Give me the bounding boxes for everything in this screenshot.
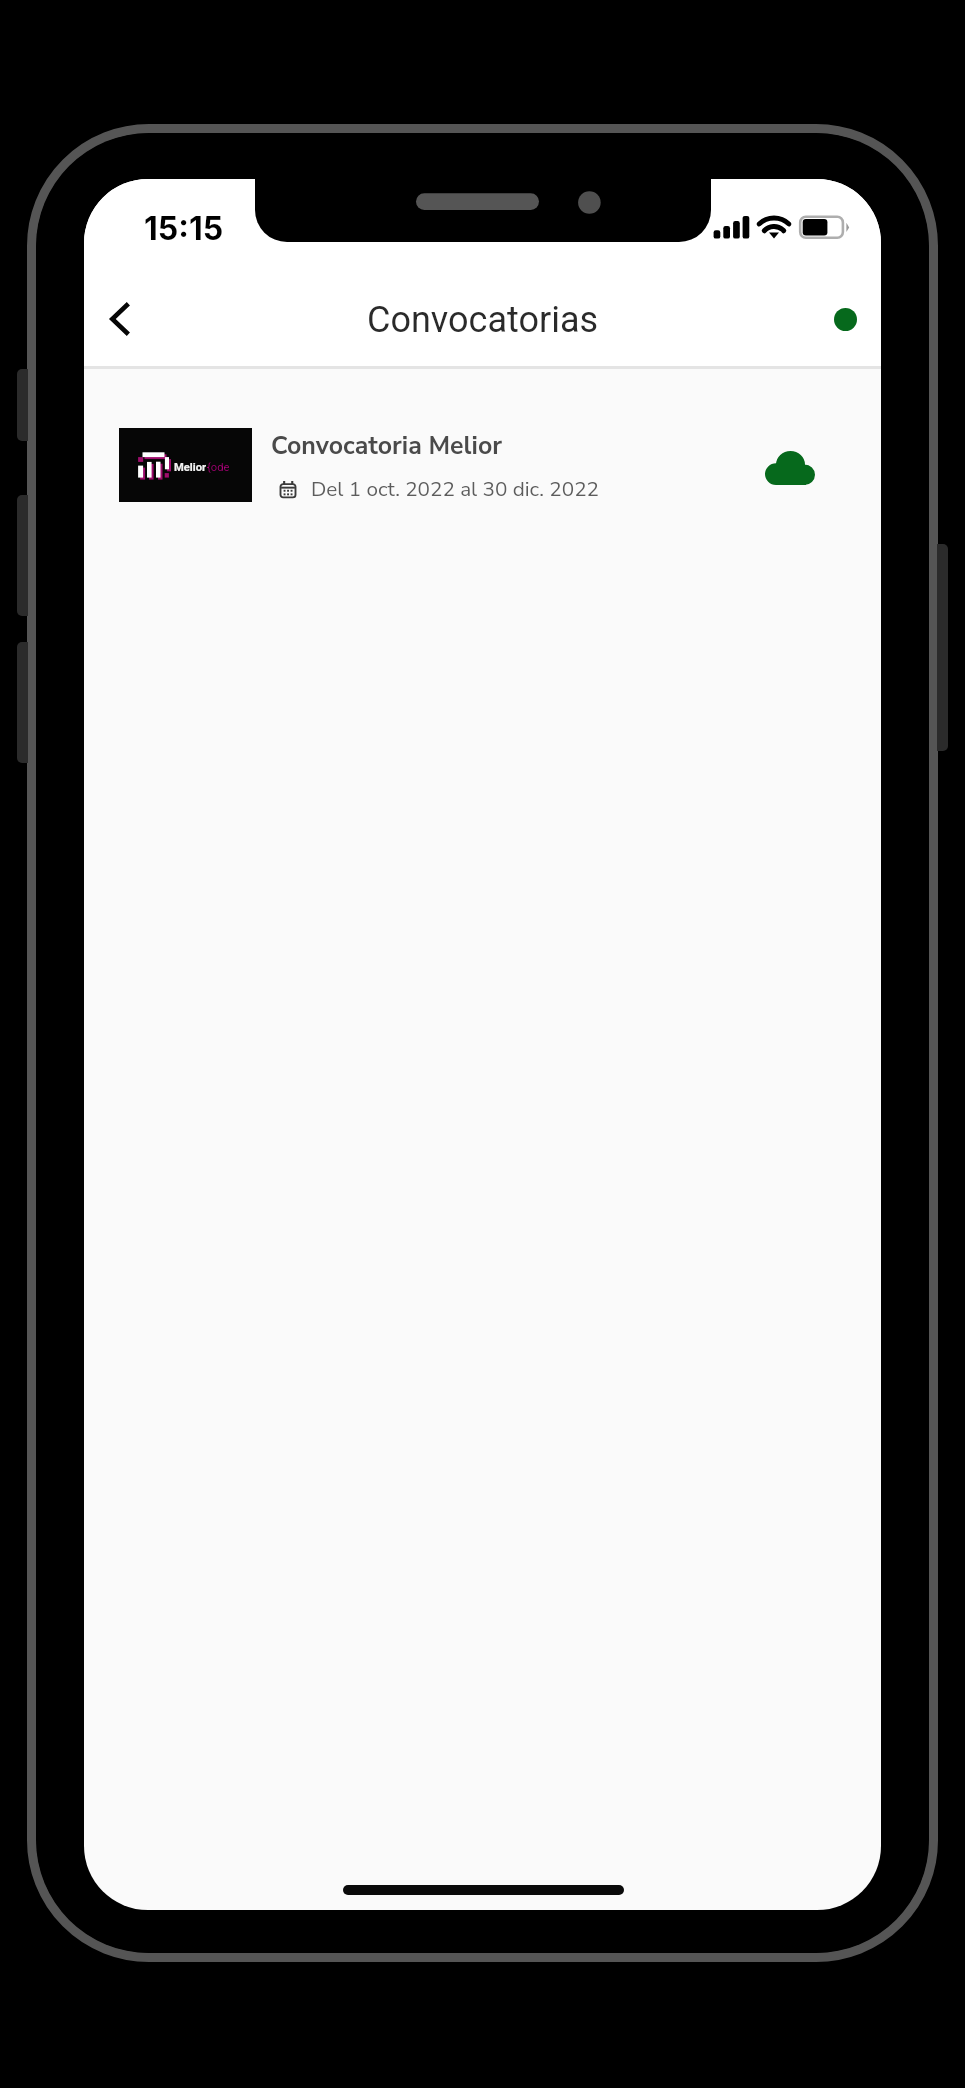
staticText: {ode	[207, 461, 230, 474]
staticText: 15:15	[144, 209, 224, 248]
staticText: Convocatoria Melior	[271, 429, 502, 463]
button[interactable]: Back	[90, 258, 150, 362]
button[interactable]: Connection status	[815, 289, 875, 349]
button[interactable]: Download	[745, 431, 835, 505]
staticText: Convocatorias	[367, 299, 599, 341]
button[interactable]: Melior	[84, 397, 881, 532]
staticText: Del 1 oct. 2022 al 30 dic. 2022	[311, 475, 600, 503]
staticText: Melior	[174, 461, 207, 474]
